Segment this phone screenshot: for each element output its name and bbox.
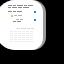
button[interactable]: Toggle [8,18,40,21]
button[interactable] [11,14,41,17]
button[interactable] [8,4,38,7]
button[interactable]: Toggle [8,10,40,13]
button[interactable] [8,7,38,10]
